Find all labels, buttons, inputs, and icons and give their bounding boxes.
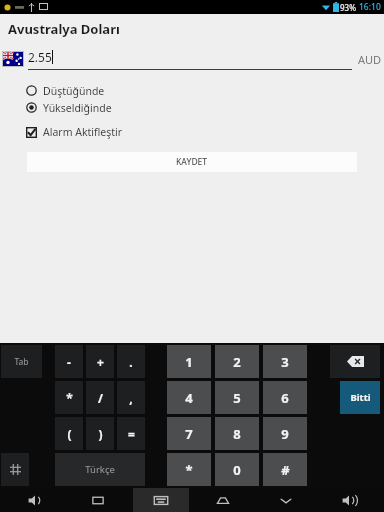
staticText: KAYDET bbox=[176, 156, 208, 168]
staticText: * bbox=[66, 390, 73, 406]
staticText: - bbox=[67, 354, 71, 370]
button[interactable]: 1 bbox=[167, 345, 211, 378]
staticText: Türkçe bbox=[85, 463, 115, 476]
button[interactable]: , bbox=[117, 381, 145, 414]
staticText: 7 bbox=[185, 425, 193, 443]
staticText: 2.55 bbox=[28, 49, 52, 65]
button[interactable]: / bbox=[86, 381, 114, 414]
button[interactable]: Bitti bbox=[340, 381, 380, 414]
staticText: Alarm Aktifleştir bbox=[43, 125, 123, 139]
staticText: 1 bbox=[185, 353, 193, 371]
button[interactable]: 8 bbox=[215, 417, 259, 450]
button[interactable]: * bbox=[55, 381, 83, 414]
button[interactable]: Change language bbox=[1, 453, 29, 486]
button[interactable]: Delete bbox=[330, 345, 380, 378]
button[interactable]: Düştüğünde bbox=[0, 82, 384, 99]
staticText: = bbox=[128, 426, 135, 442]
button[interactable]: Keyboard bbox=[133, 488, 189, 512]
staticText: Yükseldiğinde bbox=[43, 101, 112, 115]
button[interactable]: 9 bbox=[263, 417, 307, 450]
staticText: + bbox=[97, 354, 104, 370]
staticText: AUD bbox=[358, 52, 382, 67]
button[interactable]: 7 bbox=[167, 417, 211, 450]
button[interactable]: Yükseldiğinde bbox=[0, 99, 384, 116]
staticText: / bbox=[98, 390, 103, 406]
button[interactable]: Home bbox=[195, 488, 251, 512]
button[interactable]: # bbox=[263, 453, 307, 486]
button[interactable]: Tab bbox=[1, 345, 42, 378]
button[interactable]: 3 bbox=[263, 345, 307, 378]
button[interactable]: - bbox=[55, 345, 83, 378]
staticText: 4 bbox=[185, 389, 193, 407]
button[interactable]: 2 bbox=[215, 345, 259, 378]
staticText: Tab bbox=[14, 356, 29, 368]
button[interactable]: 0 bbox=[215, 453, 259, 486]
button[interactable]: ) bbox=[86, 417, 114, 450]
staticText: 6 bbox=[281, 389, 289, 407]
staticText: 16:10 bbox=[359, 1, 381, 13]
button[interactable]: KAYDET bbox=[27, 152, 357, 172]
button[interactable]: 4 bbox=[167, 381, 211, 414]
staticText: Bitti bbox=[350, 391, 371, 404]
staticText: Avustralya Doları bbox=[8, 20, 120, 38]
button[interactable]: . bbox=[117, 345, 145, 378]
staticText: ) bbox=[98, 426, 103, 442]
button[interactable]: = bbox=[117, 417, 145, 450]
button[interactable]: Volume down bbox=[7, 488, 63, 512]
button[interactable]: Recent apps bbox=[70, 488, 126, 512]
button[interactable]: Alarm Aktifleştir bbox=[0, 124, 384, 140]
button[interactable]: + bbox=[86, 345, 114, 378]
staticText: Düştüğünde bbox=[43, 84, 105, 98]
button[interactable]: 5 bbox=[215, 381, 259, 414]
staticText: 8 bbox=[233, 425, 241, 443]
staticText: , bbox=[129, 390, 133, 406]
button[interactable]: 6 bbox=[263, 381, 307, 414]
button[interactable]: Türkçe bbox=[55, 453, 145, 486]
button[interactable]: ( bbox=[55, 417, 83, 450]
staticText: 93% bbox=[340, 2, 356, 13]
button[interactable]: Hide keyboard bbox=[258, 488, 314, 512]
staticText: 9 bbox=[281, 425, 289, 443]
staticText: 5 bbox=[233, 389, 241, 407]
staticText: * bbox=[185, 461, 193, 479]
staticText: 2 bbox=[233, 353, 241, 371]
staticText: ( bbox=[67, 426, 72, 442]
button[interactable]: * bbox=[167, 453, 211, 486]
staticText: . bbox=[129, 354, 133, 370]
staticText: # bbox=[281, 461, 290, 479]
button[interactable]: Volume up bbox=[321, 488, 377, 512]
staticText: 3 bbox=[281, 353, 289, 371]
staticText: 0 bbox=[233, 461, 241, 479]
